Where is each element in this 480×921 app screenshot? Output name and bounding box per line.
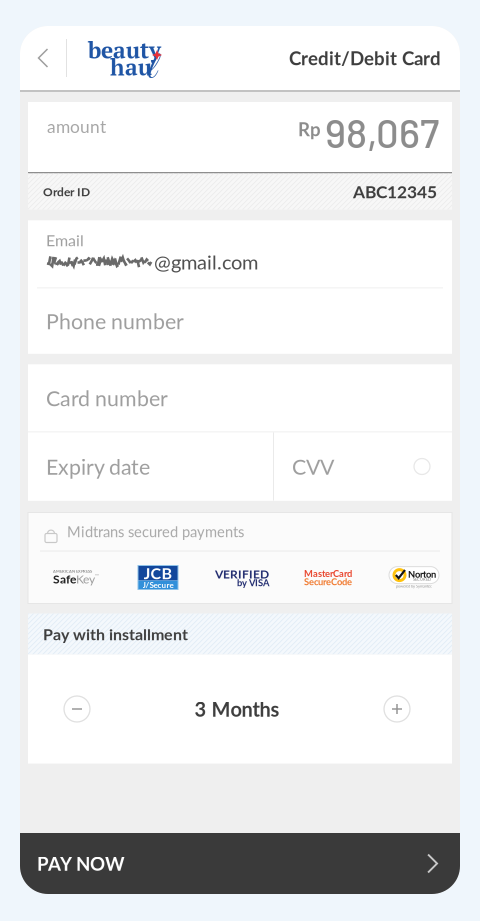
button[interactable]: Decrease installment months [55,687,99,731]
button[interactable]: Expiry date [28,432,273,500]
staticText: JCB [143,563,172,583]
button[interactable]: CVV [274,432,452,500]
button[interactable]: Phone number [28,288,452,353]
staticText: Norton [408,569,436,580]
staticText: by VISA [237,577,269,588]
button[interactable]: Increase installment months [375,687,419,731]
staticText: Phone number [46,308,184,334]
staticText: amount [47,116,106,137]
staticText: AMERICAN EXPRESS [53,569,92,574]
staticText: Credit/Debit Card [289,47,441,69]
staticText: Expiry date [46,454,150,479]
staticText: Order ID [43,184,90,199]
staticText: Email [46,230,84,250]
staticText: Rp [298,118,321,140]
staticText: hau [110,52,152,82]
staticText: l [147,44,156,94]
staticText: Key [76,572,95,586]
staticText: Card number [46,385,168,411]
staticText: Midtrans secured payments [67,523,244,540]
button[interactable]: PAY NOW [20,833,460,894]
staticText: powered by Symantec [396,584,432,588]
staticText: @gmail.com [154,250,258,274]
staticText: 98,067 [325,108,439,156]
staticText: ™ [95,573,99,579]
button[interactable]: Back [20,26,66,90]
staticText: SecureCode [304,576,352,587]
staticText: Pay with installment [43,624,188,644]
staticText: Safe [53,572,76,586]
staticText: beauty [88,35,161,65]
staticText: MasterCard [304,568,352,579]
staticText: CVV [292,454,334,479]
button[interactable]: Email [28,220,452,287]
staticText: PAY NOW [37,852,125,875]
staticText: SECURED [413,577,431,582]
button[interactable]: Card number [28,364,452,431]
staticText: 3 Months [194,697,279,721]
staticText: VERIFIED [215,567,269,581]
staticText: J/Secure [142,580,173,590]
staticText: ABC12345 [353,181,437,202]
